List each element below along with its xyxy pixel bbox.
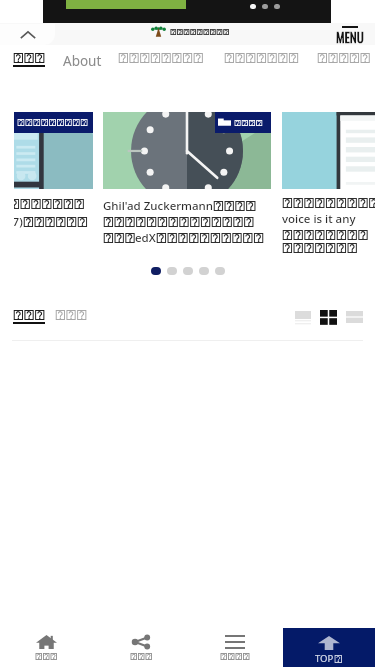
- staticText: TOP: [315, 652, 334, 665]
- button[interactable]: Menu: [330, 26, 370, 47]
- staticText: Ghil'ad Zuckermann: [103, 198, 213, 214]
- button[interactable]: Section tab 2: [55, 310, 87, 320]
- button[interactable]: Advertisement: [43, 0, 331, 23]
- button[interactable]: Article 2: [103, 112, 271, 246]
- button[interactable]: Tab 3: [118, 53, 204, 63]
- button[interactable]: Page 5: [215, 267, 225, 275]
- staticText: 07): [14, 214, 23, 230]
- button[interactable]: Page 2: [167, 267, 177, 275]
- button[interactable]: About: [63, 52, 102, 70]
- button[interactable]: Menu: [200, 630, 270, 667]
- button[interactable]: Tab 5: [317, 53, 371, 63]
- staticText: voice is it any: [282, 211, 356, 227]
- staticText: edX: [135, 230, 156, 246]
- button[interactable]: Article 3: [282, 112, 375, 253]
- button[interactable]: Grid view: [320, 310, 337, 325]
- button[interactable]: Share: [106, 630, 176, 667]
- button[interactable]: Collapse banner: [0, 24, 55, 45]
- button[interactable]: Back to top: [283, 628, 375, 667]
- button[interactable]: Page 1: [151, 267, 161, 275]
- button[interactable]: Section tab 1: [13, 310, 45, 324]
- button[interactable]: Site logo: [151, 26, 229, 37]
- button[interactable]: Page 3: [183, 267, 193, 275]
- button[interactable]: Page 4: [199, 267, 209, 275]
- button[interactable]: Article 1: [14, 112, 93, 252]
- staticText: MENU: [336, 27, 364, 46]
- button[interactable]: List view: [295, 310, 311, 324]
- button[interactable]: Tab 1: [13, 53, 45, 67]
- button[interactable]: Home: [11, 630, 81, 667]
- button[interactable]: Compact view: [346, 310, 363, 324]
- button[interactable]: Tab 4: [224, 53, 299, 63]
